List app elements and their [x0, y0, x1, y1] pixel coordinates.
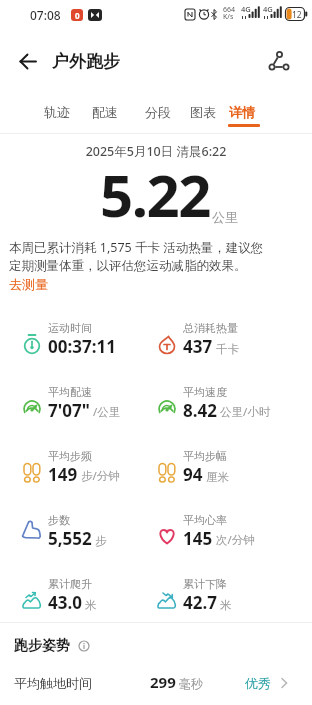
staticText: 公里/小时 [220, 404, 271, 420]
button[interactable]: 图表 [190, 104, 216, 120]
button[interactable]: 运动时间 [21, 321, 161, 373]
button[interactable] [19, 53, 39, 70]
staticText: 94 [183, 463, 203, 486]
staticText: 7'07" [48, 399, 90, 422]
staticText: 轨迹 [44, 104, 70, 120]
staticText: 43.0 [48, 591, 82, 614]
staticText: 步数 [48, 513, 70, 527]
staticText: 次/分钟 [216, 532, 255, 548]
staticText: 配速 [92, 104, 118, 120]
staticText: 厘米 [206, 470, 229, 484]
staticText: 平均步幅 [183, 449, 227, 463]
button[interactable]: 详情 [229, 104, 255, 120]
staticText: 累计下降 [183, 577, 227, 591]
staticText: 米 [220, 598, 232, 612]
button[interactable]: 平均心率 [156, 513, 296, 565]
button[interactable]: 配速 [92, 104, 118, 120]
staticText: 千卡 [216, 342, 239, 356]
button[interactable]: 平均步幅 [156, 449, 296, 501]
staticText: 分段 [145, 104, 171, 120]
staticText: 平均心率 [183, 513, 227, 527]
staticText: 664 [223, 5, 236, 15]
button[interactable]: 去测量 [9, 276, 48, 292]
staticText: 去测量 [9, 276, 48, 292]
button[interactable]: 步数 [21, 513, 161, 565]
button[interactable]: 轨迹 [44, 104, 70, 120]
staticText: 8.42 [183, 399, 217, 422]
staticText: 平均速度 [183, 385, 227, 399]
staticText: 5,552 [48, 527, 92, 550]
staticText: 运动时间 [48, 321, 92, 335]
staticText: 优秀 [245, 675, 271, 691]
staticText: /公里 [93, 404, 121, 420]
button[interactable]: 平均配速 [21, 385, 161, 437]
button[interactable]: 平均触地时间 [0, 664, 312, 705]
staticText: 户外跑步 [52, 51, 120, 72]
staticText: 42.7 [183, 591, 217, 614]
staticText: 149 [48, 463, 78, 486]
staticText: 步/分钟 [81, 468, 120, 484]
staticText: 4G [263, 4, 273, 14]
staticText: 2025年5月10日 清晨6:22 [0, 143, 312, 160]
button[interactable]: 平均速度 [156, 385, 296, 437]
button[interactable] [265, 48, 291, 74]
staticText: 07:08 [30, 7, 61, 23]
staticText: 毫秒 [179, 676, 203, 691]
staticText: K/s [223, 12, 234, 22]
staticText: 0 [75, 10, 80, 21]
staticText: 145 [183, 527, 213, 550]
staticText: 跑步姿势 [14, 637, 70, 655]
button[interactable]: 分段 [145, 104, 171, 120]
staticText: 12 [292, 9, 302, 21]
staticText: 步 [95, 534, 107, 548]
button[interactable]: 总消耗热量 [156, 321, 296, 373]
staticText: 平均触地时间 [14, 675, 92, 691]
staticText: 详情 [229, 104, 255, 120]
button[interactable]: 平均步频 [21, 449, 161, 501]
staticText: 米 [85, 598, 97, 612]
button[interactable]: 累计下降 [156, 577, 296, 629]
staticText: 总消耗热量 [183, 321, 238, 335]
staticText: 00:37:11 [48, 335, 116, 358]
staticText: 本周已累计消耗 1,575 千卡 活动热量，建议您 定期测量体重，以评估您运动减… [9, 239, 264, 274]
staticText: 平均步频 [48, 449, 92, 463]
button[interactable]: 累计爬升 [21, 577, 161, 629]
staticText: 公里 [212, 209, 238, 225]
staticText: 图表 [190, 104, 216, 120]
staticText: 4G [241, 4, 251, 14]
staticText: 平均配速 [48, 385, 92, 399]
staticText: 299 [150, 672, 176, 692]
staticText: 437 [183, 335, 213, 358]
staticText: 5.22 [100, 155, 210, 234]
staticText: 累计爬升 [48, 577, 92, 591]
